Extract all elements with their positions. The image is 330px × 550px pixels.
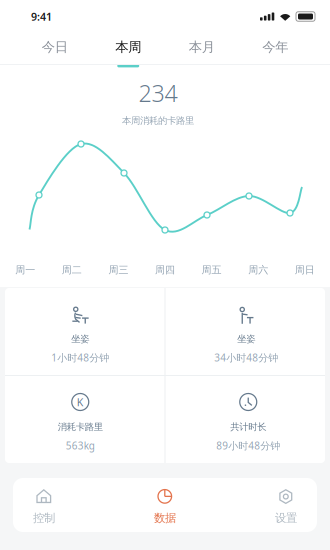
button[interactable]: K: [5, 376, 164, 463]
staticText: 坐姿: [71, 333, 89, 345]
staticText: 周三: [108, 264, 128, 276]
staticText: 9:41: [31, 9, 52, 24]
staticText: 消耗卡路里: [58, 421, 103, 433]
staticText: 周五: [202, 264, 222, 276]
staticText: 坐姿: [237, 333, 255, 345]
button[interactable]: 数据: [154, 478, 176, 532]
staticText: 周二: [62, 264, 82, 276]
button[interactable]: 共计时长: [165, 376, 325, 463]
button[interactable]: 本周: [91, 33, 165, 66]
staticText: 1小时48分钟: [51, 351, 109, 364]
button[interactable]: 设置: [275, 478, 297, 532]
button[interactable]: 坐姿: [165, 288, 325, 375]
staticText: 设置: [275, 511, 297, 525]
staticText: 234: [138, 77, 177, 109]
button[interactable]: 今日: [18, 33, 91, 66]
staticText: 89小时48分钟: [216, 439, 280, 452]
staticText: 今日: [42, 39, 68, 55]
staticText: 控制: [33, 511, 55, 525]
staticText: 本周消耗的卡路里: [122, 115, 194, 127]
staticText: 本周: [115, 39, 141, 55]
staticText: 周日: [295, 264, 315, 276]
staticText: 共计时长: [230, 421, 266, 433]
staticText: 周六: [248, 264, 268, 276]
staticText: 周一: [15, 264, 35, 276]
button[interactable]: 控制: [33, 478, 55, 532]
staticText: 周四: [155, 264, 175, 276]
button[interactable]: 坐姿: [5, 288, 164, 375]
staticText: 本月: [189, 39, 215, 55]
button[interactable]: 今年: [238, 33, 312, 66]
button[interactable]: 本月: [165, 33, 238, 66]
staticText: K: [77, 395, 84, 409]
staticText: 今年: [262, 39, 288, 55]
staticText: 563kg: [66, 439, 95, 452]
staticText: 数据: [154, 511, 176, 525]
staticText: 34小时48分钟: [214, 351, 278, 364]
